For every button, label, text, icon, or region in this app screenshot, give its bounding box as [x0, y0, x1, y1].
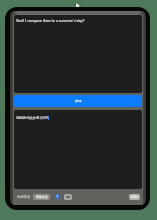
staticText: 我能把你比作夏天吗? — [16, 115, 48, 120]
staticText: 目标语言 — [17, 195, 31, 199]
button[interactable]: Swap languages — [55, 194, 60, 199]
button[interactable]: 复制 — [129, 194, 140, 200]
staticText: 复制 — [131, 195, 138, 199]
staticText: Shall I compare thee to a summer's day? — [16, 18, 85, 23]
button[interactable]: 翻译 — [14, 95, 142, 107]
staticText: 简体中文 — [36, 195, 48, 199]
button[interactable]: 简体中文 — [33, 194, 50, 200]
button[interactable]: Play pronunciation — [64, 194, 72, 200]
staticText: 翻译 — [75, 99, 82, 103]
